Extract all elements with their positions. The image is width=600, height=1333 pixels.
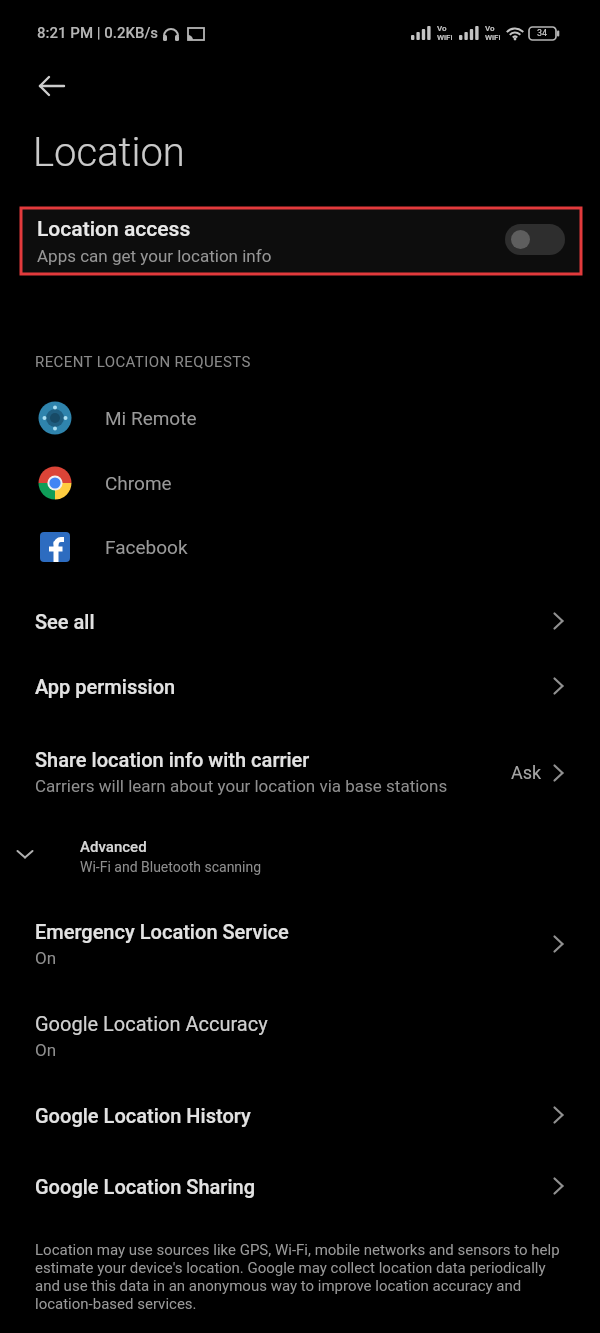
staticText: Vo WiFi — [437, 24, 453, 42]
button[interactable] — [505, 224, 565, 255]
button[interactable]: Chrome — [0, 459, 600, 507]
staticText: Wi-Fi and Bluetooth scanning — [80, 859, 262, 875]
staticText: Google Location Sharing — [35, 1175, 255, 1198]
button[interactable]: Mi Remote — [0, 394, 600, 442]
button[interactable]: Location access — [21, 208, 581, 274]
staticText: Vo WiFi — [485, 24, 501, 42]
staticText: Apps can get your location info — [37, 246, 272, 266]
staticText: Location may use sources like GPS, Wi-Fi… — [35, 1241, 560, 1313]
button[interactable]: Emergency Location Service — [0, 912, 600, 976]
button[interactable]: Google Location Accuracy — [0, 1004, 600, 1068]
staticText: See all — [35, 610, 95, 633]
staticText: Chrome — [105, 472, 172, 494]
staticText: Advanced — [80, 838, 147, 856]
staticText: Carriers will learn about your location … — [35, 776, 448, 796]
staticText: Share location info with carrier — [35, 748, 310, 771]
staticText: Facebook — [105, 536, 188, 558]
staticText: RECENT LOCATION REQUESTS — [35, 353, 251, 371]
staticText: Ask — [511, 762, 542, 783]
staticText: Emergency Location Service — [35, 920, 289, 943]
staticText: On — [35, 948, 57, 968]
button[interactable] — [39, 76, 65, 96]
staticText: On — [35, 1040, 57, 1060]
staticText: Location — [33, 129, 185, 176]
staticText: Google Location Accuracy — [35, 1012, 268, 1035]
button[interactable]: Facebook — [0, 523, 600, 571]
button[interactable]: App permission — [0, 660, 600, 712]
staticText: Location access — [37, 217, 191, 242]
staticText: 34 — [537, 28, 548, 39]
button[interactable]: Share location info with carrier — [0, 740, 600, 804]
button[interactable]: Advanced — [0, 828, 600, 884]
button[interactable]: Google Location History — [0, 1089, 600, 1141]
staticText: Mi Remote — [105, 407, 197, 429]
staticText: Google Location History — [35, 1104, 251, 1127]
button[interactable]: See all — [0, 595, 600, 647]
button[interactable]: Google Location Sharing — [0, 1160, 600, 1212]
staticText: 8:21 PM | 0.2KB/s — [37, 24, 159, 42]
staticText: App permission — [35, 675, 176, 698]
